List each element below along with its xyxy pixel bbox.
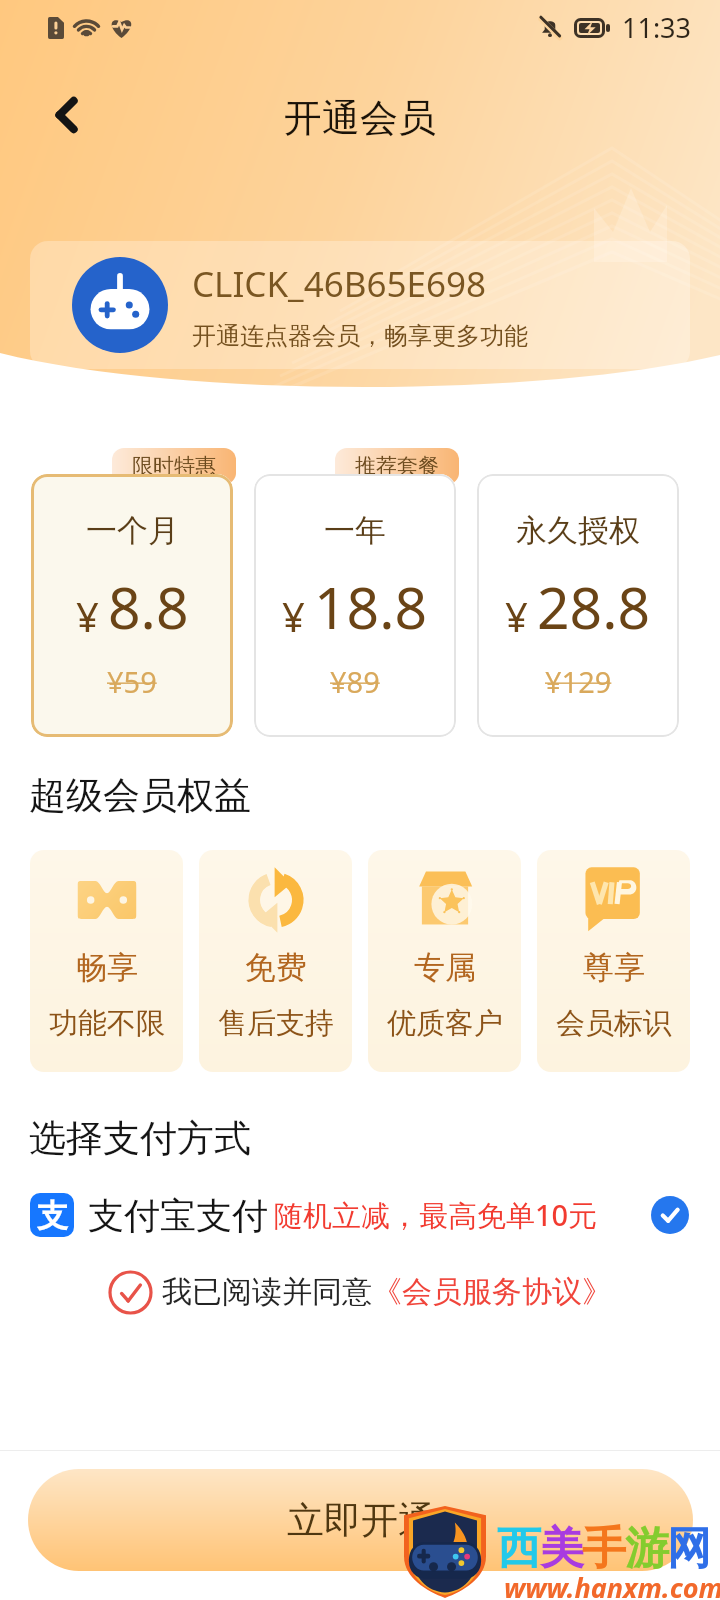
button[interactable]: Selected <box>651 1196 689 1234</box>
staticText: 美 <box>540 1521 584 1576</box>
staticText: 开通连点器会员，畅享更多功能 <box>192 321 528 351</box>
staticText: 支付宝支付 <box>88 1193 268 1238</box>
staticText: 会员标识 <box>556 1005 672 1042</box>
staticText: ¥ <box>505 589 528 643</box>
staticText: 11:33 <box>622 9 692 46</box>
staticText: 永久授权 <box>516 511 640 550</box>
staticText: 一个月 <box>86 511 179 550</box>
staticText: 手 <box>582 1521 626 1576</box>
staticText: 推荐套餐 <box>355 453 439 479</box>
staticText: ¥ <box>282 589 305 643</box>
button[interactable]: 永久授权 <box>477 474 679 737</box>
staticText: ¥129 <box>545 662 612 701</box>
staticText: 网 <box>667 1521 711 1576</box>
staticText: 功能不限 <box>49 1005 165 1042</box>
staticText: 优质客户 <box>387 1005 503 1042</box>
staticText: 开通会员 <box>284 94 436 142</box>
button[interactable]: 支 <box>0 1190 720 1240</box>
staticText: 28.8 <box>537 568 651 646</box>
staticText: 畅享 <box>76 948 138 987</box>
button[interactable]: 免费 <box>199 850 352 1072</box>
staticText: 专属 <box>414 948 476 987</box>
staticText: CLICK_46B65E698 <box>192 260 487 308</box>
staticText: 我已阅读并同意 <box>162 1273 372 1311</box>
button[interactable]: 立即开通 <box>28 1469 693 1571</box>
staticText: 西 <box>497 1521 541 1576</box>
staticText: ¥89 <box>330 662 380 701</box>
button[interactable]: 一个月 <box>31 474 233 737</box>
staticText: 一年 <box>324 511 386 550</box>
staticText: 限时特惠 <box>132 453 216 479</box>
button[interactable]: Back <box>38 86 96 144</box>
staticText: 18.8 <box>314 568 428 646</box>
button[interactable]: 一年 <box>254 474 456 737</box>
button[interactable]: Agree to terms <box>104 1268 156 1316</box>
staticText: 超级会员权益 <box>29 772 251 819</box>
staticText: 售后支持 <box>218 1005 334 1042</box>
staticText: 立即开通 <box>287 1497 435 1544</box>
staticText: 游 <box>625 1521 669 1576</box>
staticText: 随机立减，最高免单10元 <box>274 1195 598 1235</box>
button[interactable]: 《会员服务协议》 <box>372 1273 612 1311</box>
button[interactable]: 畅享 <box>30 850 183 1072</box>
staticText: 8.8 <box>108 568 189 646</box>
staticText: www.hanxm.com <box>504 1569 720 1600</box>
staticText: 支 <box>37 1196 68 1235</box>
staticText: ¥59 <box>107 662 157 701</box>
button[interactable]: 尊享 <box>537 850 690 1072</box>
staticText: 免费 <box>245 948 307 987</box>
staticText: 尊享 <box>583 948 645 987</box>
staticText: ¥ <box>76 589 99 643</box>
button[interactable]: CLICK_46B65E698 <box>30 241 690 369</box>
button[interactable]: 专属 <box>368 850 521 1072</box>
staticText: 选择支付方式 <box>29 1115 251 1162</box>
